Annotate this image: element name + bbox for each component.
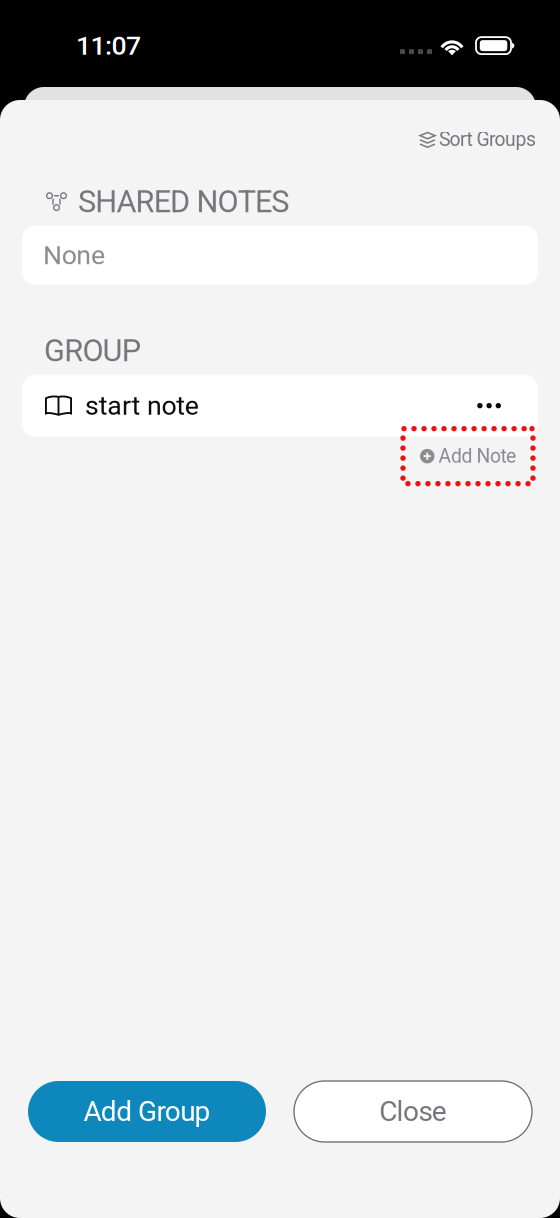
button[interactable]: start note xyxy=(0,375,560,437)
staticText: GROUP xyxy=(44,333,141,369)
button[interactable]: Sort Groups xyxy=(417,124,538,155)
button[interactable]: Close xyxy=(294,1081,532,1142)
staticText: Add Note xyxy=(438,445,516,467)
staticText: Add Group xyxy=(83,1095,211,1128)
button[interactable]: Add Group xyxy=(28,1081,266,1142)
staticText: SHARED NOTES xyxy=(78,184,289,220)
staticText: Close xyxy=(379,1095,447,1128)
staticText: 11:07 xyxy=(76,30,141,61)
staticText: Sort Groups xyxy=(439,128,536,151)
staticText: None xyxy=(43,239,105,271)
button[interactable]: Add Note xyxy=(403,429,533,484)
staticText: start note xyxy=(85,390,199,421)
